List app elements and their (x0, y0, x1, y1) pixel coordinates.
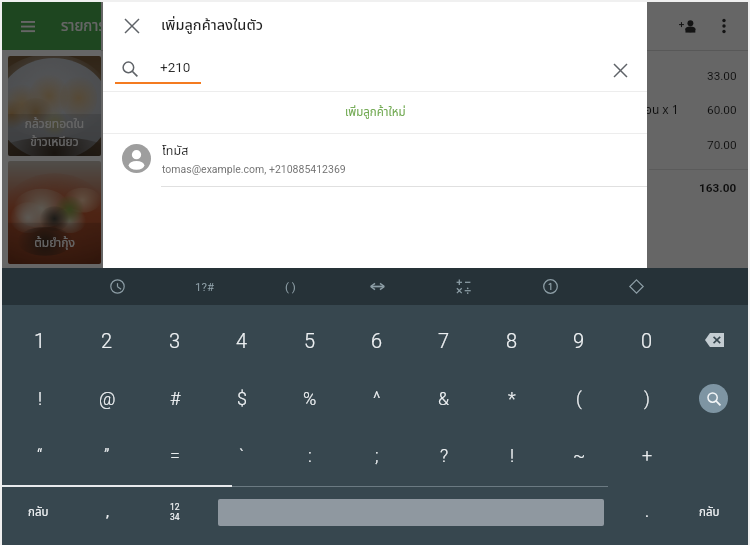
button[interactable]: 6 (346, 318, 408, 362)
button[interactable]: ^ (346, 376, 408, 420)
staticText: 0 (641, 329, 653, 352)
button[interactable]: # (144, 376, 206, 420)
button[interactable]: Numbers (144, 490, 206, 534)
button[interactable]: Close (112, 6, 152, 46)
button[interactable]: . (616, 490, 678, 534)
staticText: กลับ (28, 504, 49, 521)
button[interactable]: * (481, 376, 543, 420)
button[interactable]: History (98, 268, 136, 305)
staticText: 9 (573, 329, 585, 352)
button[interactable]: ! (9, 376, 71, 420)
button[interactable]: ~ (548, 433, 610, 477)
button[interactable]: 2 (76, 318, 138, 362)
button[interactable]: ( ) (268, 268, 312, 305)
button[interactable]: 9 (548, 318, 610, 362)
button[interactable]: 8 (481, 318, 543, 362)
button[interactable]: More options (709, 11, 739, 41)
button[interactable]: 1?# (182, 268, 226, 305)
button[interactable]: โทมัส (103, 132, 647, 184)
staticText: # (170, 388, 181, 409)
staticText: * (508, 388, 516, 409)
button[interactable]: ; (346, 433, 408, 477)
staticText: กล้วยทอดใน ข้าวเหนียว (8, 115, 101, 151)
staticText: + (642, 445, 653, 466)
button[interactable]: Menu (16, 14, 40, 38)
staticText: ? (440, 445, 449, 466)
staticText: 6 (371, 329, 383, 352)
button[interactable]: อน x 1 (645, 97, 748, 123)
staticText: @ (99, 388, 116, 409)
staticText: : (308, 445, 312, 466)
staticText: โทมัส (162, 142, 189, 161)
button[interactable]: กลับ (7, 490, 69, 534)
staticText: . (645, 503, 649, 521)
button[interactable]: 5 (279, 318, 341, 362)
button[interactable]: ต้มยำกุ้ง (8, 161, 101, 264)
staticText: 60.00 (707, 103, 737, 117)
button[interactable]: 163.00 (645, 175, 748, 201)
button[interactable]: Info (531, 268, 569, 305)
staticText: = (170, 445, 180, 466)
staticText: อน x 1 (645, 101, 679, 119)
button[interactable]: ) (616, 376, 678, 420)
button[interactable]: & (413, 376, 475, 420)
staticText: ! (38, 388, 43, 409)
button[interactable]: 70.00 (645, 132, 748, 158)
staticText: 33.00 (707, 69, 737, 83)
button[interactable]: 7 (413, 318, 475, 362)
button[interactable]: + (616, 433, 678, 477)
staticText: ^ (373, 388, 381, 409)
staticText: เพิ่มลูกค้าลงในตัว (161, 15, 263, 37)
button[interactable]: 4 (211, 318, 273, 362)
staticText: 7 (438, 329, 450, 352)
button[interactable]: Add customer (673, 11, 703, 41)
staticText: ! (510, 445, 515, 466)
button[interactable]: Search (699, 384, 728, 413)
button[interactable]: $ (211, 376, 273, 420)
button[interactable]: ( (548, 376, 610, 420)
button[interactable]: Shapes (617, 268, 655, 305)
button[interactable]: เพิ่มลูกค้าใหม่ (103, 92, 647, 133)
button[interactable]: Arrow (358, 268, 396, 305)
staticText: รายการสินค้า (61, 15, 101, 38)
button[interactable]: = (144, 433, 206, 477)
button[interactable]: ? (413, 433, 475, 477)
staticText: ~ (573, 445, 586, 466)
staticText: % (303, 388, 317, 409)
button[interactable]: Clear text (601, 51, 639, 89)
staticText: 1?# (195, 280, 214, 293)
button[interactable]: 33.00 (645, 63, 748, 89)
button[interactable]: กล้วยทอดใน ข้าวเหนียว (8, 56, 101, 156)
staticText: 70.00 (707, 138, 737, 152)
button[interactable]: ! (481, 433, 543, 477)
staticText: ” (104, 445, 110, 466)
staticText: , (106, 503, 109, 521)
staticText: 3 (169, 329, 181, 352)
button[interactable]: Math (444, 268, 482, 305)
staticText: & (438, 388, 450, 409)
button[interactable]: ` (211, 433, 273, 477)
button[interactable]: Backspace (681, 318, 747, 362)
staticText: “ (37, 445, 43, 466)
staticText: 2 (101, 329, 113, 352)
staticText: กลับ (699, 504, 720, 521)
staticText: 8 (506, 329, 518, 352)
button[interactable]: “ (9, 433, 71, 477)
button[interactable]: กลับ (678, 490, 740, 534)
button[interactable]: % (279, 376, 341, 420)
staticText: ต้มยำกุ้ง (8, 234, 101, 252)
button[interactable]: 3 (144, 318, 206, 362)
button[interactable]: 1 (9, 318, 71, 362)
staticText: 34 (170, 512, 180, 522)
button[interactable]: , (76, 490, 138, 534)
staticText: เพิ่มลูกค้าใหม่ (345, 104, 406, 121)
staticText: 1 (34, 329, 46, 352)
button[interactable]: ” (76, 433, 138, 477)
staticText: ; (375, 445, 379, 466)
button[interactable]: 0 (616, 318, 678, 362)
staticText: 163.00 (699, 181, 737, 195)
staticText: ` (239, 445, 245, 466)
button[interactable]: : (279, 433, 341, 477)
button[interactable]: @ (76, 376, 138, 420)
